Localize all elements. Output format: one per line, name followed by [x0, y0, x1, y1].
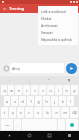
button[interactable]: v: [34, 107, 42, 118]
button[interactable]: p: [71, 85, 78, 95]
button[interactable]: e: [15, 85, 22, 95]
button[interactable]: j: [51, 96, 58, 106]
staticText: Lidé a možnosti: [41, 9, 66, 14]
button[interactable]: b: [43, 107, 51, 118]
staticText: v: [37, 110, 39, 115]
staticText: n: [55, 110, 58, 115]
button[interactable]: m: [61, 107, 69, 118]
staticText: Smazat: [41, 30, 53, 35]
staticText: Hledat: [41, 16, 52, 21]
button[interactable]: d: [19, 96, 26, 106]
button[interactable]: c: [25, 107, 33, 118]
staticText: q: [3, 88, 6, 93]
staticText: ,: [17, 122, 18, 127]
staticText: :: [9, 78, 10, 83]
button[interactable]: o: [63, 85, 70, 95]
staticText: ;: [29, 78, 30, 83]
button[interactable]: g: [35, 96, 42, 106]
button[interactable]: Lidé a možnosti: [38, 8, 78, 15]
button[interactable]: ¶: [59, 76, 79, 84]
staticText: r: [26, 88, 28, 93]
staticText: Archivovat: [41, 23, 58, 28]
staticText: Ahoj: [12, 66, 20, 71]
staticText: e: [18, 88, 20, 93]
button[interactable]: Emoji: [2, 64, 10, 72]
button[interactable]: Hledat: [38, 15, 78, 22]
button[interactable]: Send: [66, 63, 77, 74]
button[interactable]: Nápověda a zpětná vazba: [38, 36, 78, 43]
button[interactable]: h: [43, 96, 50, 106]
button[interactable]: Smazat: [38, 29, 78, 36]
staticText: a: [6, 99, 8, 104]
staticText: .: [61, 122, 62, 127]
button[interactable]: ,: [14, 119, 21, 130]
button[interactable]: ?123: [1, 119, 13, 130]
button[interactable]: l: [67, 96, 74, 106]
button[interactable]: ": [39, 76, 59, 84]
staticText: f: [30, 99, 32, 104]
staticText: l: [70, 99, 71, 104]
button[interactable]: Enter: [66, 119, 78, 130]
button[interactable]: n: [52, 107, 60, 118]
button[interactable]: q: [1, 85, 7, 95]
button[interactable]: u: [47, 85, 54, 95]
button[interactable]: Ahoj: [10, 63, 64, 73]
button[interactable]: w: [8, 85, 14, 95]
staticText: b: [46, 110, 49, 115]
button[interactable]: Back: [0, 131, 19, 140]
button[interactable]: t: [31, 85, 38, 95]
staticText: w: [10, 88, 13, 93]
button[interactable]: a: [4, 96, 10, 106]
staticText: i: [58, 88, 59, 93]
staticText: m: [63, 110, 67, 115]
button[interactable]: i: [55, 85, 62, 95]
button[interactable]: r: [23, 85, 30, 95]
staticText: ⌫: [72, 111, 77, 115]
staticText: ⇧: [3, 111, 6, 115]
button[interactable]: x: [17, 107, 24, 118]
button[interactable]: k: [59, 96, 66, 106]
staticText: u: [49, 88, 52, 93]
staticText: ?123: [4, 123, 10, 126]
button[interactable]: Back: [0, 4, 9, 13]
button[interactable]: ⇧: [1, 107, 8, 118]
button[interactable]: Archivovat: [38, 22, 78, 29]
staticText: h: [45, 99, 48, 104]
button[interactable]: y: [9, 107, 16, 118]
staticText: x: [20, 110, 22, 115]
staticText: t: [34, 88, 36, 93]
staticText: y: [12, 110, 14, 115]
button[interactable]: Home: [19, 131, 39, 140]
staticText: Trening: [9, 6, 25, 12]
staticText: k: [62, 99, 64, 104]
button[interactable]: ⌫: [70, 107, 78, 118]
staticText: s: [14, 99, 16, 104]
staticText: ¶: [68, 78, 71, 83]
staticText: g: [37, 99, 40, 104]
button[interactable]: z: [39, 85, 46, 95]
staticText: ": [48, 78, 50, 83]
staticText: j: [54, 99, 55, 104]
staticText: d: [21, 99, 24, 104]
staticText: z: [42, 88, 44, 93]
staticText: o: [65, 88, 68, 93]
staticText: p: [73, 88, 76, 93]
staticText: c: [28, 110, 30, 115]
button[interactable]: f: [27, 96, 34, 106]
button[interactable]: Recents: [39, 131, 59, 140]
button[interactable]: Menu: [59, 131, 79, 140]
staticText: Nápověda a zpětná vazba: [41, 37, 75, 42]
button[interactable]: s: [11, 96, 18, 106]
